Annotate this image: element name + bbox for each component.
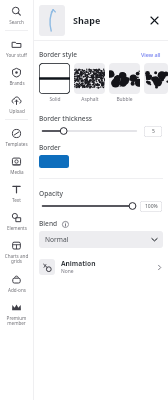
staticText: Bubble — [116, 96, 133, 103]
staticText: Blend — [39, 219, 58, 228]
staticText: Add-ons — [8, 287, 26, 293]
button[interactable]: Bubble — [109, 63, 140, 103]
button[interactable]: Templates — [0, 122, 33, 150]
button[interactable]: 5 — [144, 126, 162, 137]
button[interactable]: Solid — [39, 63, 70, 103]
button[interactable]: Media — [0, 150, 33, 178]
staticText: Solid — [49, 96, 61, 103]
staticText: None — [61, 268, 74, 275]
staticText: Search — [9, 19, 24, 25]
staticText: 100% — [145, 203, 158, 210]
staticText: Premium member — [2, 315, 31, 327]
staticText: Media — [10, 169, 24, 175]
button[interactable]: Search — [0, 0, 33, 28]
staticText: Upload — [9, 108, 25, 114]
button[interactable]: Close — [147, 13, 162, 28]
staticText: View all — [141, 51, 161, 58]
staticText: Elements — [7, 225, 27, 231]
staticText: Normal — [45, 235, 69, 244]
staticText: Opacity — [39, 189, 64, 198]
staticText: Border thickness — [39, 114, 93, 123]
button[interactable]: Value slider — [39, 200, 136, 212]
button[interactable]: Upload — [0, 89, 33, 117]
staticText: Animation — [61, 259, 96, 268]
staticText: Charts and grids — [2, 253, 31, 265]
staticText: 5 — [152, 128, 155, 135]
staticText: Shape — [73, 14, 101, 26]
button[interactable]: Value slider — [39, 125, 140, 137]
staticText: Your stuff — [6, 52, 27, 58]
button[interactable]: Border colour — [39, 155, 69, 168]
button[interactable]: View all — [140, 50, 162, 59]
button[interactable]: Text — [0, 178, 33, 206]
staticText: Border style — [39, 50, 78, 59]
button[interactable]: Premium member — [0, 296, 33, 330]
button[interactable]: Add-ons — [0, 268, 33, 296]
staticText: Text — [12, 197, 21, 203]
button[interactable]: 100% — [140, 201, 162, 212]
button[interactable]: About blend modes — [61, 220, 69, 228]
button[interactable]: Selected shape preview — [39, 5, 65, 36]
button[interactable]: Your stuff — [0, 33, 33, 61]
staticText: Brands — [9, 80, 25, 86]
button[interactable] — [144, 63, 168, 94]
button[interactable]: Brands — [0, 61, 33, 89]
staticText: Border — [39, 143, 61, 152]
button[interactable]: Asphalt — [74, 63, 105, 103]
button[interactable]: Charts and grids — [0, 234, 33, 268]
button[interactable]: Animation — [39, 255, 163, 279]
button[interactable]: Elements — [0, 206, 33, 234]
button[interactable]: Normal — [39, 231, 163, 248]
staticText: Templates — [5, 141, 28, 147]
staticText: Asphalt — [81, 96, 99, 103]
